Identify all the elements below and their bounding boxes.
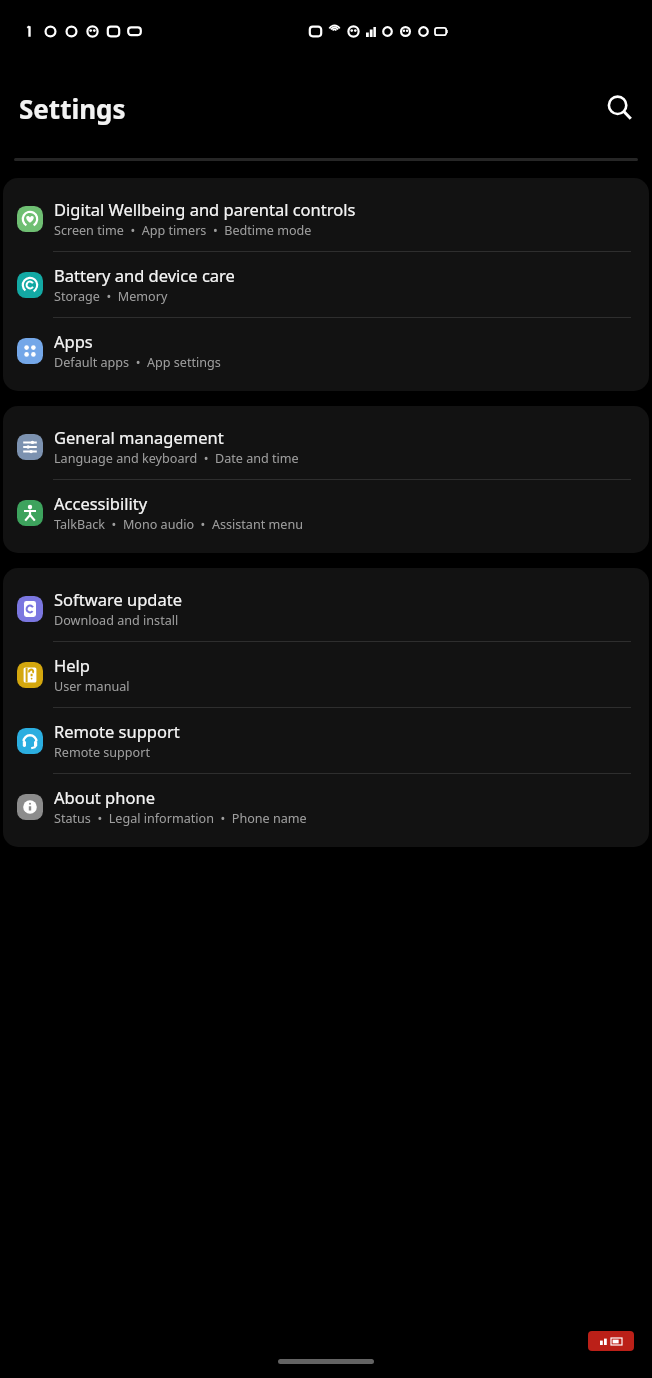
button[interactable]: Accessibility [3, 480, 649, 545]
staticText: Screen time • App timers • Bedtime mode [54, 222, 312, 239]
button[interactable]: Help [3, 642, 649, 707]
staticText: User manual [54, 678, 130, 695]
staticText: Settings [19, 91, 126, 126]
staticText: Remote support [54, 744, 150, 761]
button[interactable]: Software update [3, 576, 649, 641]
staticText: Digital Wellbeing and parental controls [54, 198, 356, 220]
staticText: Language and keyboard • Date and time [54, 450, 299, 467]
staticText: Storage • Memory [54, 288, 168, 305]
staticText: General management [54, 426, 224, 448]
staticText: Download and install [54, 612, 179, 629]
button[interactable]: General management [3, 414, 649, 479]
staticText: About phone [54, 786, 155, 808]
button[interactable]: Apps [3, 318, 649, 383]
button[interactable]: About phone [3, 774, 649, 839]
staticText: TalkBack • Mono audio • Assistant menu [54, 516, 303, 533]
staticText: Apps [54, 330, 93, 352]
staticText: Software update [54, 588, 182, 610]
staticText: Battery and device care [54, 264, 235, 286]
staticText: Help [54, 654, 90, 676]
staticText: Remote support [54, 720, 180, 742]
button[interactable]: Search settings [603, 91, 637, 125]
button[interactable]: Remote support [3, 708, 649, 773]
staticText: Accessibility [54, 492, 148, 514]
staticText: Default apps • App settings [54, 354, 221, 371]
button[interactable]: Battery and device care [3, 252, 649, 317]
button[interactable]: Digital Wellbeing and parental controls [3, 186, 649, 251]
staticText: Status • Legal information • Phone name [54, 810, 307, 827]
